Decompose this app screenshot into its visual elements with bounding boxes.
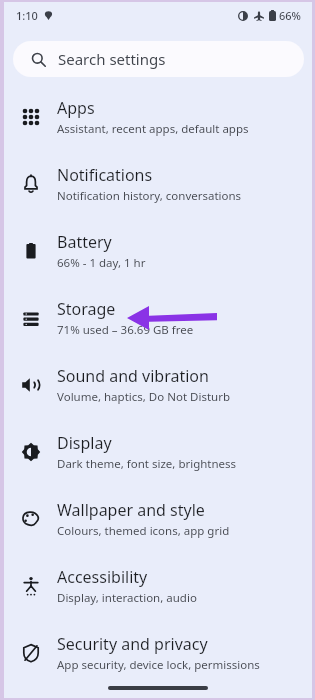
other: Search: [31, 52, 46, 67]
staticText: App security, device lock, permissions: [57, 657, 260, 673]
staticText: Apps: [57, 97, 95, 119]
staticText: Assistant, recent apps, default apps: [57, 121, 249, 137]
staticText: Storage: [57, 298, 116, 320]
button[interactable]: Sound and vibration: [4, 361, 312, 409]
button[interactable]: Battery: [4, 227, 312, 275]
button[interactable]: Storage: [4, 294, 312, 342]
staticText: 66%: [279, 8, 301, 23]
staticText: Sound and vibration: [57, 365, 209, 387]
button[interactable]: Apps: [4, 93, 312, 141]
staticText: Dark theme, font size, brightness: [57, 456, 237, 472]
button[interactable]: Notifications: [4, 160, 312, 208]
staticText: 1:10: [16, 8, 38, 23]
staticText: Notifications: [57, 164, 153, 186]
button[interactable]: Accessibility: [4, 562, 312, 610]
button[interactable]: Security and privacy: [4, 629, 312, 677]
button[interactable]: Display: [4, 428, 312, 476]
staticText: Colours, themed icons, app grid: [57, 523, 230, 539]
staticText: Accessibility: [57, 566, 148, 588]
staticText: Volume, haptics, Do Not Disturb: [57, 389, 230, 405]
staticText: 66% - 1 day, 1 hr: [57, 255, 146, 271]
staticText: Battery: [57, 231, 112, 253]
staticText: Search settings: [58, 49, 166, 69]
staticText: 71% used – 36.69 GB free: [57, 322, 194, 338]
staticText: Security and privacy: [57, 633, 208, 655]
staticText: Wallpaper and style: [57, 499, 205, 521]
button[interactable]: Search: [13, 41, 304, 77]
staticText: Display, interaction, audio: [57, 590, 197, 606]
staticText: Display: [57, 432, 112, 454]
button[interactable]: Wallpaper and style: [4, 495, 312, 543]
staticText: Notification history, conversations: [57, 188, 242, 204]
